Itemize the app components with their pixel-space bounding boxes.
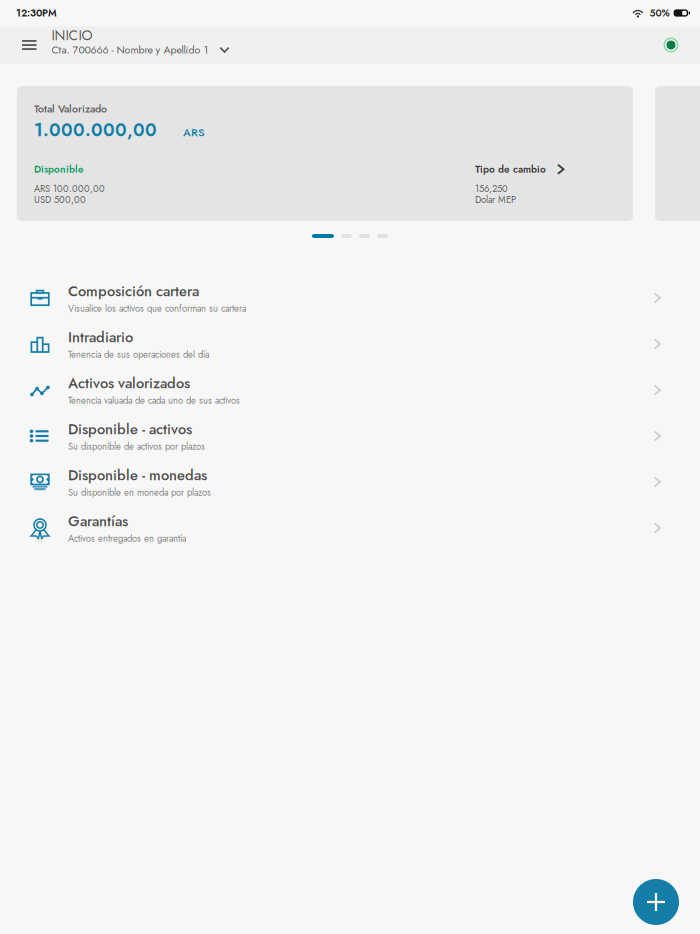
staticText: Composición cartera xyxy=(68,281,199,302)
button[interactable]: Agregar xyxy=(633,879,679,925)
staticText: 50% xyxy=(650,6,670,20)
button[interactable]: Activos valorizados xyxy=(0,367,700,413)
staticText: Intradiario xyxy=(68,327,133,348)
staticText: 12:30PM xyxy=(16,6,57,20)
staticText: Dolar MEP xyxy=(475,193,516,206)
button[interactable]: Garantías xyxy=(0,505,700,551)
button[interactable]: Disponible - activos xyxy=(0,413,700,459)
button[interactable]: Disponible - monedas xyxy=(0,459,700,505)
staticText: Garantías xyxy=(68,511,128,532)
button[interactable]: Estado de conexion xyxy=(658,32,684,58)
staticText: 156,250 xyxy=(475,182,508,195)
staticText: Disponible - activos xyxy=(68,419,192,440)
staticText: USD 500,00 xyxy=(34,193,86,206)
staticText: Tenencia valuada de cada uno de sus acti… xyxy=(68,394,240,407)
staticText: Activos valorizados xyxy=(68,373,190,394)
staticText: 1.000.000,00 xyxy=(34,117,157,143)
staticText: Tenencia de sus operaciones del día xyxy=(68,348,209,361)
staticText: Disponible - monedas xyxy=(68,465,207,486)
button[interactable]: Composición cartera xyxy=(0,275,700,321)
staticText: ARS 100.000,00 xyxy=(34,182,105,195)
button[interactable]: Cta. 700666 - Nombre y Apellido 1 xyxy=(51,45,229,57)
staticText: Disponible xyxy=(34,162,84,176)
staticText: INICIO xyxy=(51,25,92,45)
staticText: Activos entregados en garantía xyxy=(68,532,186,545)
staticText: Tipo de cambio xyxy=(475,162,546,176)
button[interactable]: Intradiario xyxy=(0,321,700,367)
staticText: Total Valorizado xyxy=(34,101,107,116)
button[interactable]: Menu xyxy=(11,27,47,63)
staticText: Cta. 700666 - Nombre y Apellido 1 xyxy=(51,42,208,57)
staticText: Su disponible en moneda por plazos xyxy=(68,486,211,499)
staticText: Visualice los activos que conforman su c… xyxy=(68,302,246,315)
staticText: ARS xyxy=(183,124,205,140)
staticText: Su disponible de activos por plazos xyxy=(68,440,205,453)
